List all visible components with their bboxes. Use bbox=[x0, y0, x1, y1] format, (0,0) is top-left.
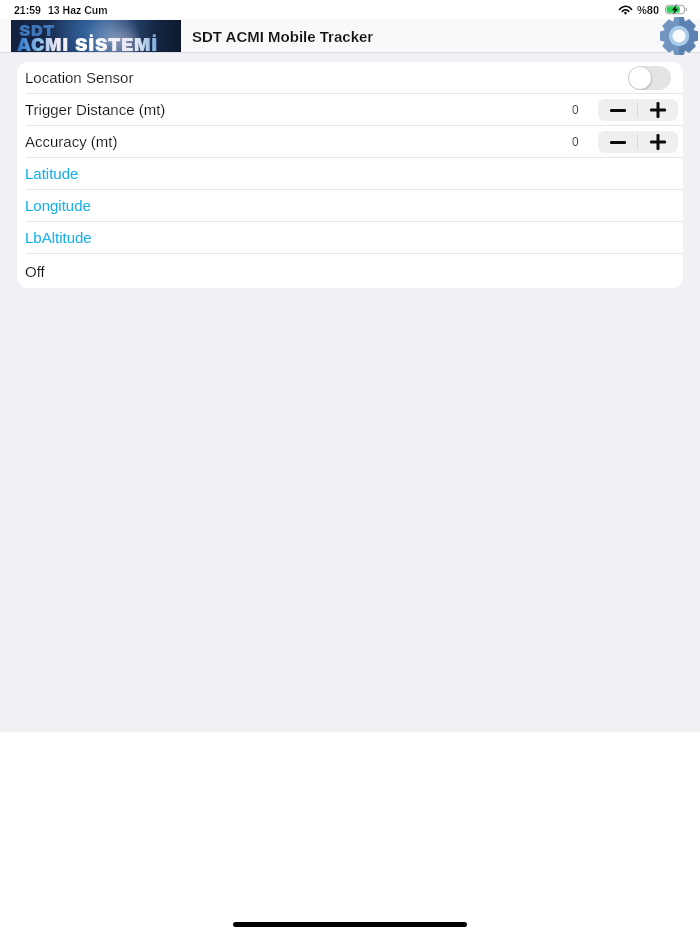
button[interactable]: Location Sensor toggle bbox=[628, 66, 671, 90]
staticText: SDT ACMI Mobile Tracker bbox=[192, 28, 374, 45]
staticText: SDT bbox=[19, 22, 55, 39]
staticText: Longitude bbox=[25, 197, 91, 214]
button[interactable]: Location Sensor bbox=[17, 62, 683, 93]
staticText: Trigger Distance (mt) bbox=[25, 101, 166, 118]
button[interactable]: Increase bbox=[638, 131, 678, 153]
staticText: Location Sensor bbox=[25, 69, 134, 86]
button[interactable]: Accuracy (mt) bbox=[17, 126, 683, 157]
staticText: Off bbox=[25, 263, 45, 280]
staticText: 13 Haz Cum bbox=[48, 4, 108, 16]
button[interactable]: LbAltitude bbox=[17, 222, 683, 253]
staticText: 0 bbox=[572, 135, 579, 148]
staticText: Latitude bbox=[25, 165, 79, 182]
button[interactable]: Decrease bbox=[598, 99, 637, 121]
button[interactable]: Settings bbox=[660, 17, 698, 55]
staticText: 21:59 bbox=[14, 4, 41, 16]
button[interactable]: Longitude bbox=[17, 190, 683, 221]
button[interactable]: Off bbox=[17, 254, 683, 288]
button[interactable]: Trigger Distance (mt) bbox=[17, 94, 683, 125]
button[interactable]: Latitude bbox=[17, 158, 683, 189]
staticText: %80 bbox=[637, 4, 660, 16]
staticText: LbAltitude bbox=[25, 229, 92, 246]
button[interactable]: Increase bbox=[638, 99, 678, 121]
staticText: Accuracy (mt) bbox=[25, 133, 118, 150]
staticText: ACMI SİSTEMİ bbox=[17, 35, 158, 53]
staticText: 0 bbox=[572, 103, 579, 116]
button[interactable]: Decrease bbox=[598, 131, 637, 153]
